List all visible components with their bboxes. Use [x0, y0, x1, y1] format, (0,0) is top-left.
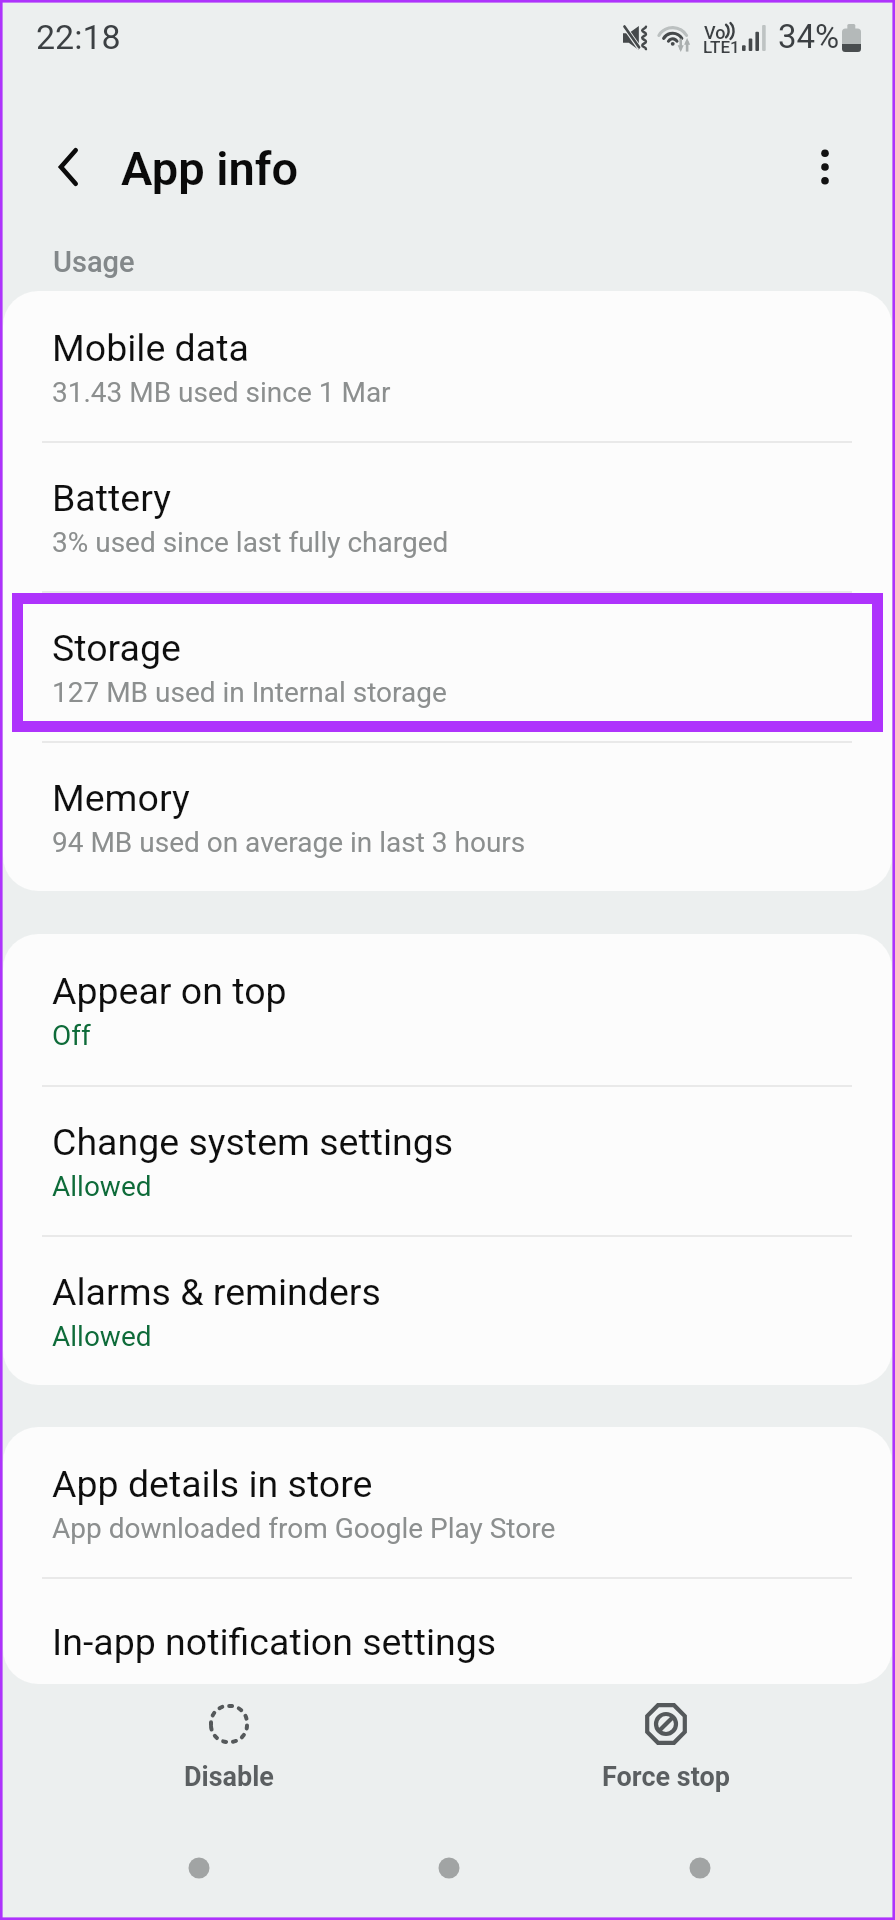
staticText: Mobile data [52, 326, 249, 370]
staticText: Vo [704, 22, 726, 43]
button[interactable]: Memory [3, 741, 892, 891]
staticText: App downloaded from Google Play Store [52, 1512, 556, 1545]
staticText: Battery [52, 476, 171, 520]
staticText: Usage [53, 245, 135, 279]
button[interactable]: Storage [3, 591, 892, 741]
button[interactable]: App details in store [3, 1427, 892, 1577]
staticText: Appear on top [52, 969, 287, 1013]
staticText: Change system settings [52, 1120, 454, 1164]
staticText: 34% [778, 17, 840, 56]
staticText: App details in store [52, 1462, 373, 1506]
staticText: LTE1 [703, 37, 740, 57]
button[interactable]: Force stop [526, 1688, 806, 1808]
button[interactable]: Appear on top [3, 934, 892, 1084]
staticText: 3% used since last fully charged [52, 526, 449, 559]
staticText: 22:18 [36, 17, 121, 57]
button[interactable]: Battery [3, 441, 892, 591]
staticText: Allowed [52, 1320, 152, 1353]
staticText: 127 MB used in Internal storage [52, 676, 447, 709]
staticText: Allowed [52, 1170, 152, 1203]
button[interactable]: Disable [89, 1688, 369, 1808]
button[interactable]: Mobile data [3, 291, 892, 441]
staticText: Off [52, 1019, 91, 1052]
staticText: Force stop [602, 1761, 730, 1793]
staticText: Storage [52, 626, 181, 670]
staticText: Disable [184, 1761, 274, 1793]
button[interactable]: Change system settings [3, 1085, 892, 1235]
button[interactable]: More options [775, 119, 871, 215]
button[interactable]: Navigate up [19, 118, 115, 214]
staticText: Alarms & reminders [52, 1270, 381, 1314]
staticText: Memory [52, 776, 190, 820]
staticText: 94 MB used on average in last 3 hours [52, 826, 526, 859]
staticText: 31.43 MB used since 1 Mar [52, 376, 391, 409]
button[interactable]: Alarms & reminders [3, 1235, 892, 1385]
staticText: In-app notification settings [52, 1620, 497, 1664]
button[interactable]: In-app notification settings [3, 1577, 892, 1684]
staticText: App info [121, 141, 299, 196]
